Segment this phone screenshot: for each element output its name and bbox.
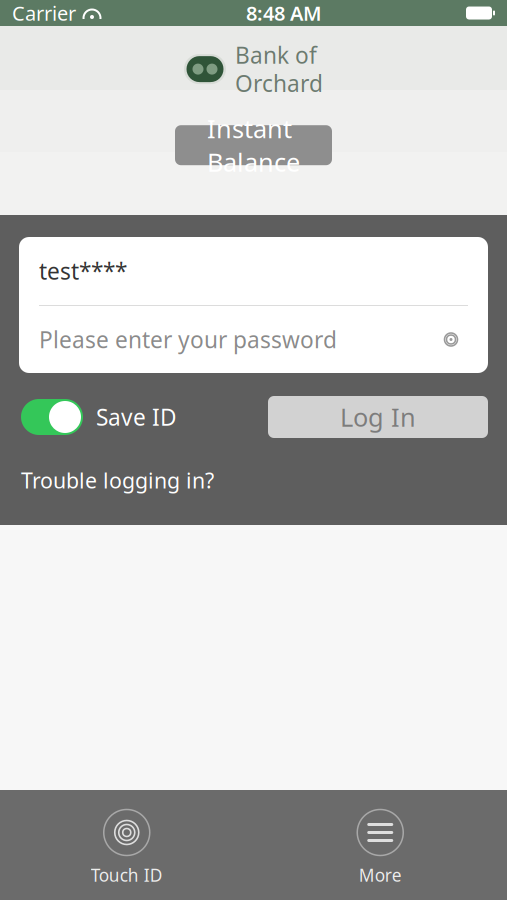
staticText: Trouble logging in? (21, 466, 214, 494)
staticText: Bank of (235, 40, 317, 70)
staticText: Save ID (96, 402, 177, 432)
staticText: Carrier (12, 0, 76, 26)
button[interactable]: Trouble logging in? (21, 466, 214, 494)
staticText: More (359, 863, 402, 886)
staticText: Log In (340, 400, 416, 434)
button[interactable]: Log In (268, 396, 488, 438)
button[interactable]: Touch ID (0, 809, 253, 886)
staticText: Please enter your password (39, 324, 337, 354)
button[interactable]: Show password (434, 322, 468, 356)
staticText: Touch ID (91, 863, 163, 886)
staticText: 8:48 AM (246, 0, 322, 26)
staticText: Instant Balance (207, 112, 300, 179)
button[interactable]: Save ID (21, 399, 177, 435)
button[interactable]: More (253, 809, 507, 886)
staticText: Orchard (235, 68, 323, 98)
staticText: test**** (39, 256, 127, 286)
button[interactable]: Instant Balance (175, 125, 332, 165)
